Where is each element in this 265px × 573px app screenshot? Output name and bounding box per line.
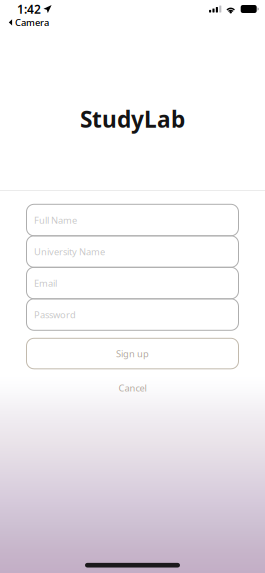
staticText: Camera <box>15 16 49 29</box>
staticText: Email <box>34 277 57 289</box>
button[interactable]: Password <box>26 299 238 330</box>
staticText: 1:42 <box>17 1 41 17</box>
button[interactable]: University Name <box>26 236 238 267</box>
staticText: Full Name <box>34 214 77 226</box>
staticText: StudyLab <box>80 104 185 134</box>
staticText: Cancel <box>118 382 146 394</box>
staticText: Password <box>34 308 76 321</box>
button[interactable]: Cancel <box>26 382 238 394</box>
button[interactable]: Full Name <box>26 204 238 236</box>
staticText: University Name <box>34 245 105 258</box>
button[interactable]: Email <box>26 267 238 299</box>
staticText: Sign up <box>116 347 149 360</box>
button[interactable]: Sign up <box>26 338 238 369</box>
